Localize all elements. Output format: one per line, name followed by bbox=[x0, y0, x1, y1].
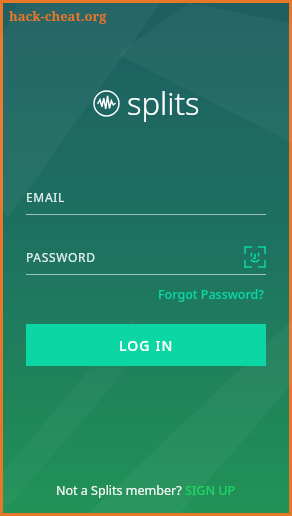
staticText: Not a Splits member? bbox=[56, 482, 185, 499]
staticText: Forgot Password? bbox=[158, 286, 264, 303]
button[interactable]: SIGN UP bbox=[185, 482, 236, 499]
staticText: PASSWORD bbox=[26, 249, 96, 265]
staticText: LOG IN bbox=[119, 336, 174, 355]
button[interactable]: PASSWORD bbox=[26, 249, 244, 265]
staticText: SIGN UP bbox=[185, 482, 236, 499]
staticText: hack-cheat.org bbox=[9, 7, 107, 25]
button[interactable]: LOG IN bbox=[26, 324, 266, 366]
button[interactable]: EMAIL bbox=[26, 189, 266, 215]
staticText: splits bbox=[127, 82, 200, 124]
button[interactable]: Forgot Password? bbox=[156, 284, 266, 305]
staticText: EMAIL bbox=[26, 189, 66, 205]
button[interactable]: Face ID login bbox=[244, 246, 266, 268]
